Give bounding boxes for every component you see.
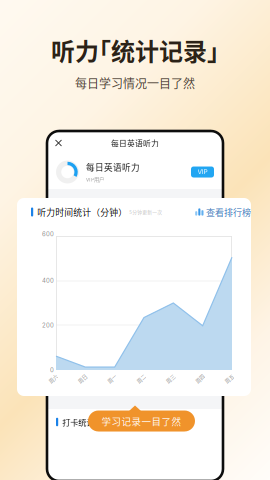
staticText: 周三 xyxy=(165,375,175,382)
button[interactable]: 查看排行榜 xyxy=(195,205,251,218)
staticText: 周四 xyxy=(195,375,205,382)
staticText: 5分钟更新一次 xyxy=(129,208,162,215)
button[interactable]: 关闭 xyxy=(50,134,67,151)
staticText: 周一 xyxy=(107,375,117,382)
staticText: 每日英语听力 xyxy=(86,161,140,173)
staticText: 0 xyxy=(50,366,54,374)
staticText: 周日 xyxy=(77,375,87,382)
button[interactable]: VIP xyxy=(191,166,214,177)
staticText: 600 xyxy=(42,230,54,238)
staticText: 周六 xyxy=(48,375,58,382)
staticText: VIP用户 xyxy=(86,175,104,183)
staticText: 每日学习情况一目了然 xyxy=(75,74,195,92)
staticText: 200 xyxy=(42,322,54,329)
staticText: 打卡统计 xyxy=(62,416,94,428)
staticText: VIP xyxy=(197,168,207,176)
staticText: 学习记录一目了然 xyxy=(101,414,181,428)
staticText: 每日英语听力 xyxy=(111,137,159,149)
staticText: 周二 xyxy=(136,375,146,382)
staticText: 听力｢统计记录｣ xyxy=(51,33,219,67)
staticText: 听力时间统计（分钟） xyxy=(37,206,127,218)
staticText: 查看排行榜 xyxy=(206,205,251,218)
staticText: 400 xyxy=(42,277,54,284)
staticText: 周五 xyxy=(224,375,234,382)
